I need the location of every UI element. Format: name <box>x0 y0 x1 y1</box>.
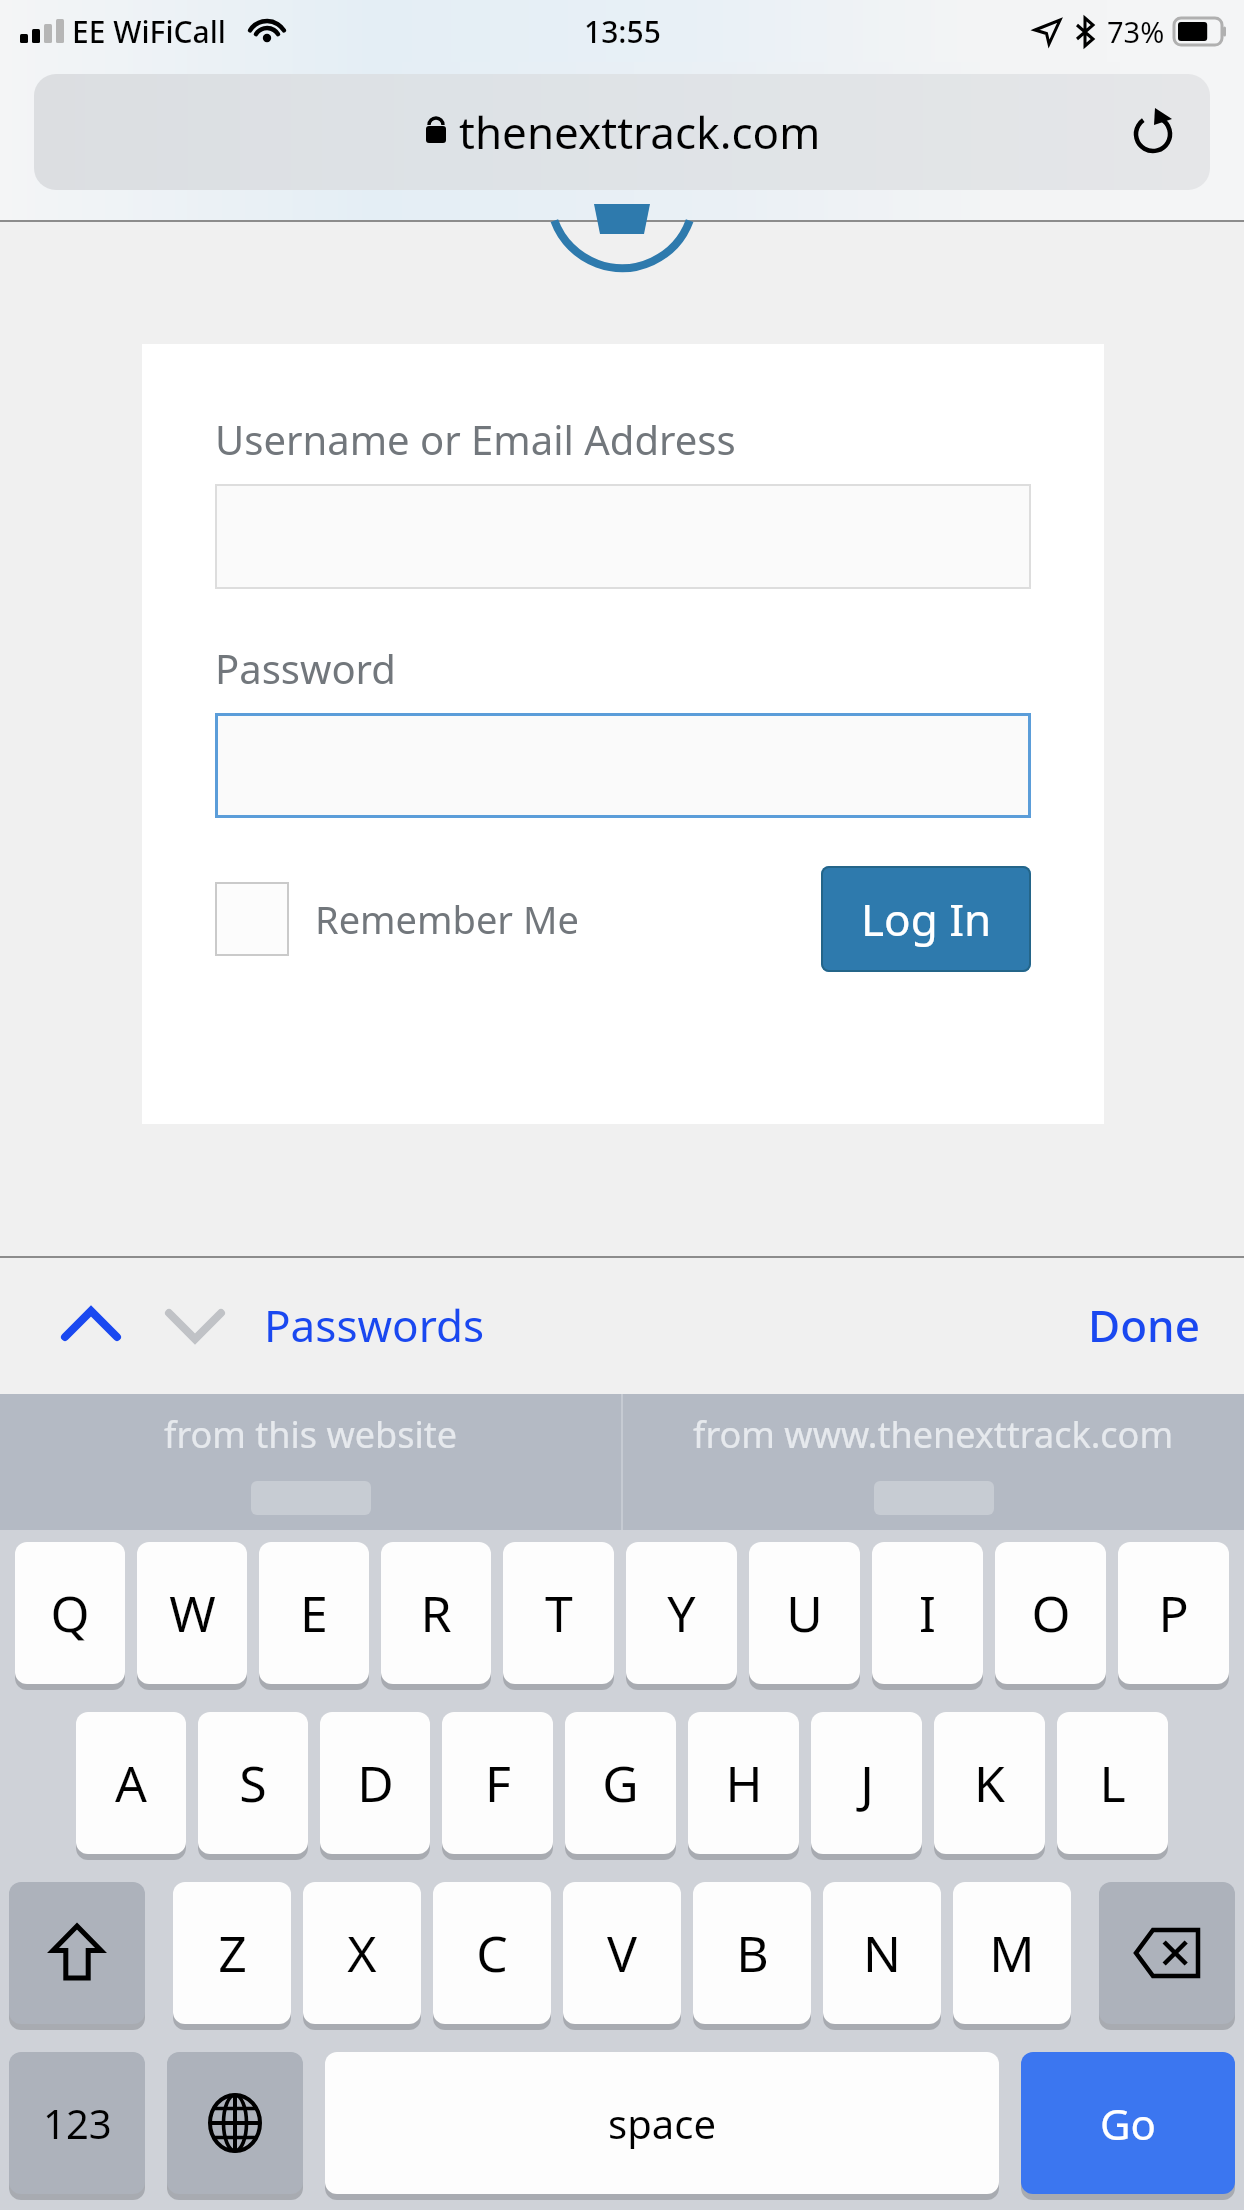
button[interactable]: A <box>76 1712 186 1854</box>
button[interactable]: Go <box>1021 2052 1235 2194</box>
staticText: B <box>736 1919 769 1987</box>
button[interactable]: B <box>693 1882 811 2024</box>
button[interactable]: G <box>565 1712 676 1854</box>
button[interactable]: from www.thenexttrack.com <box>623 1394 1244 1530</box>
staticText: EE WiFiCall <box>72 11 226 52</box>
button[interactable]: Z <box>173 1882 291 2024</box>
other: Change keyboard <box>167 2052 303 2200</box>
button[interactable]: Done <box>1088 1295 1200 1355</box>
staticText: M <box>989 1919 1035 1987</box>
staticText: D <box>357 1749 394 1817</box>
staticText: P <box>1158 1579 1189 1647</box>
button[interactable] <box>215 484 1031 589</box>
staticText: R <box>420 1579 452 1647</box>
button[interactable]: S <box>198 1712 308 1854</box>
button[interactable]: W <box>137 1542 247 1684</box>
button[interactable]: O <box>995 1542 1106 1684</box>
button[interactable]: J <box>811 1712 922 1854</box>
staticText: W <box>169 1579 216 1647</box>
button[interactable]: D <box>320 1712 430 1854</box>
staticText: V <box>607 1919 637 1987</box>
button[interactable]: M <box>953 1882 1071 2024</box>
button[interactable]: 123 <box>9 2052 145 2194</box>
staticText: Q <box>50 1579 90 1647</box>
staticText: K <box>974 1749 1005 1817</box>
staticText: Password <box>215 641 396 695</box>
staticText: G <box>602 1749 639 1817</box>
button[interactable]: Remember Me <box>215 882 579 956</box>
button[interactable]: U <box>749 1542 860 1684</box>
staticText: S <box>239 1749 267 1817</box>
staticText: Z <box>218 1919 247 1987</box>
button[interactable]: Reload <box>1120 99 1186 165</box>
staticText: Y <box>667 1579 696 1647</box>
staticText: 13:55 <box>584 11 661 52</box>
staticText: Go <box>1100 2095 1156 2152</box>
staticText: I <box>919 1579 936 1647</box>
button[interactable]: E <box>259 1542 369 1684</box>
staticText: H <box>725 1749 763 1817</box>
button[interactable]: Previous field <box>48 1290 134 1360</box>
button[interactable]: L <box>1057 1712 1168 1854</box>
staticText: from www.thenexttrack.com <box>693 1410 1174 1459</box>
staticText: E <box>300 1579 328 1647</box>
staticText: A <box>115 1749 147 1817</box>
button[interactable]: R <box>381 1542 491 1684</box>
button[interactable]: Next field <box>152 1290 238 1360</box>
button[interactable]: Log In <box>821 866 1031 972</box>
staticText: Username or Email Address <box>215 412 736 466</box>
button[interactable]: H <box>688 1712 799 1854</box>
other: Shift <box>9 1882 145 2030</box>
staticText: space <box>608 2096 716 2150</box>
button[interactable]: I <box>872 1542 983 1684</box>
staticText: T <box>545 1579 573 1647</box>
button[interactable]: C <box>433 1882 551 2024</box>
button[interactable]: V <box>563 1882 681 2024</box>
staticText: Remember Me <box>315 893 579 945</box>
button[interactable] <box>1099 1882 1235 2024</box>
button[interactable]: F <box>442 1712 553 1854</box>
button[interactable]: N <box>823 1882 941 2024</box>
button[interactable]: from this website <box>0 1394 621 1530</box>
staticText: thenexttrack.com <box>459 102 821 162</box>
button[interactable]: thenexttrack.com <box>34 74 1210 190</box>
staticText: N <box>863 1919 901 1987</box>
button[interactable] <box>215 713 1031 818</box>
staticText: 123 <box>43 2096 112 2150</box>
staticText: from this website <box>164 1410 458 1459</box>
button[interactable]: T <box>503 1542 614 1684</box>
staticText: Log In <box>861 889 992 949</box>
staticText: F <box>485 1749 511 1817</box>
button[interactable]: Passwords <box>264 1295 485 1355</box>
button[interactable]: Q <box>15 1542 125 1684</box>
staticText: O <box>1031 1579 1071 1647</box>
staticText: 73% <box>1107 12 1165 51</box>
staticText: U <box>786 1579 823 1647</box>
button[interactable]: X <box>303 1882 421 2024</box>
button[interactable] <box>167 2052 303 2194</box>
other: Backspace <box>1099 1882 1235 2030</box>
button[interactable]: Y <box>626 1542 737 1684</box>
button[interactable] <box>9 1882 145 2024</box>
staticText: C <box>476 1919 508 1987</box>
button[interactable]: space <box>325 2052 999 2194</box>
staticText: J <box>860 1749 874 1817</box>
staticText: L <box>1099 1749 1126 1817</box>
staticText: X <box>347 1919 377 1987</box>
button[interactable]: K <box>934 1712 1045 1854</box>
button[interactable]: P <box>1118 1542 1229 1684</box>
